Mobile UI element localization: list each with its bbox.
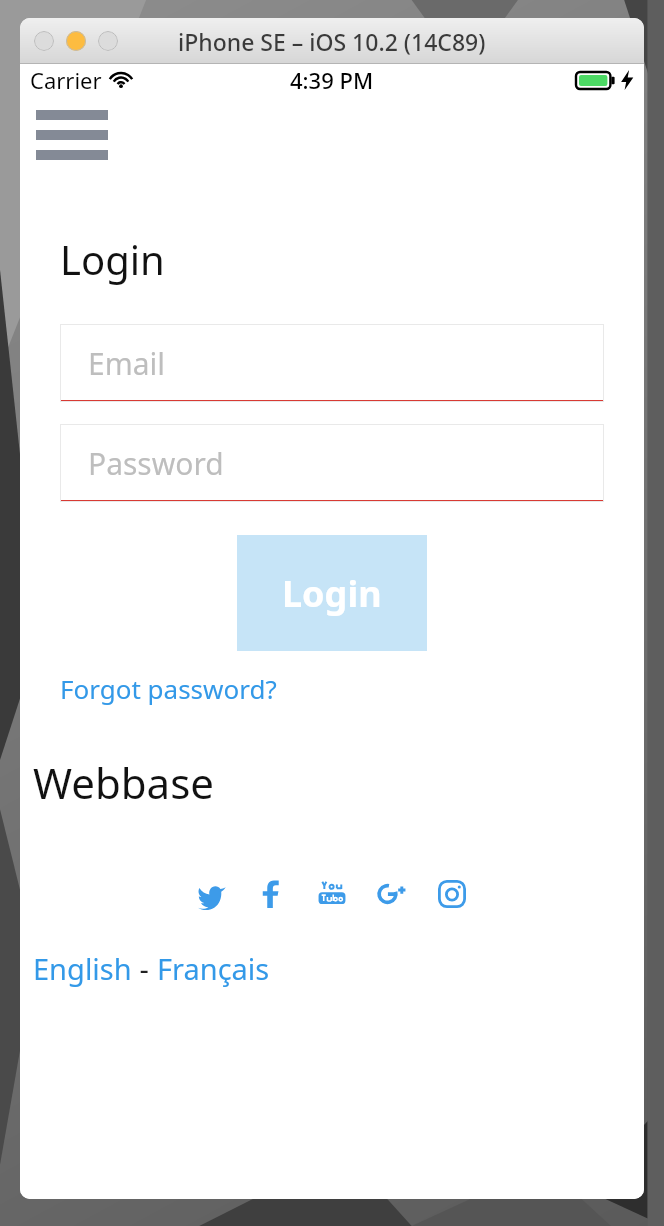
staticText: Password [88, 443, 224, 484]
button[interactable]: Window button [66, 31, 86, 51]
button[interactable]: Window button [98, 31, 118, 51]
button[interactable]: Forgot password? [60, 671, 277, 706]
staticText: Login [60, 232, 165, 286]
button[interactable]: Login [237, 535, 427, 651]
staticText: - [132, 949, 157, 988]
button[interactable]: Email [60, 324, 604, 402]
staticText: Login [282, 569, 382, 618]
button[interactable]: Password [60, 424, 604, 502]
button[interactable]: Google Plus [375, 877, 409, 911]
button[interactable]: Window button [34, 31, 54, 51]
staticText: Forgot password? [60, 671, 277, 706]
staticText: Webbase [33, 754, 214, 811]
button[interactable]: Twitter [195, 877, 229, 911]
button[interactable]: English [33, 949, 132, 988]
button[interactable]: Français [157, 949, 270, 988]
staticText: Français [157, 949, 270, 988]
button[interactable]: YouTube [315, 877, 349, 911]
staticText: English [33, 949, 132, 988]
button[interactable]: Menu [36, 110, 108, 160]
staticText: iPhone SE – iOS 10.2 (14C89) [178, 26, 486, 57]
button[interactable]: Facebook [255, 877, 289, 911]
staticText: Carrier [30, 65, 102, 95]
button[interactable]: Instagram [435, 877, 469, 911]
staticText: 4:39 PM [290, 65, 374, 95]
staticText: Email [88, 343, 166, 384]
